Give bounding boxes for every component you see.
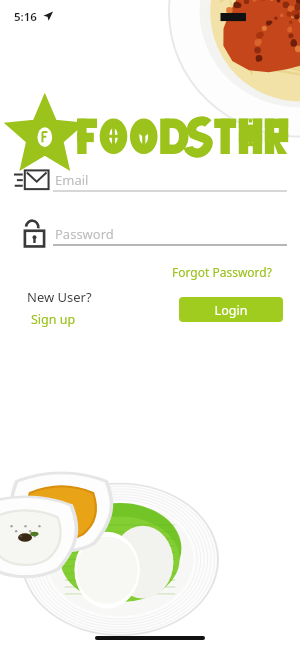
button[interactable]: Sign up	[31, 311, 87, 329]
staticText: 5:16	[14, 9, 37, 25]
staticText: Email	[55, 171, 89, 189]
button[interactable]: Login	[179, 297, 283, 322]
staticText: Login	[179, 302, 283, 319]
staticText: New User?	[27, 288, 92, 306]
staticText: Password	[55, 225, 114, 243]
staticText: Forgot Password?	[172, 264, 272, 280]
staticText: Sign up	[31, 311, 76, 328]
button[interactable]: Forgot Password?	[172, 264, 288, 282]
